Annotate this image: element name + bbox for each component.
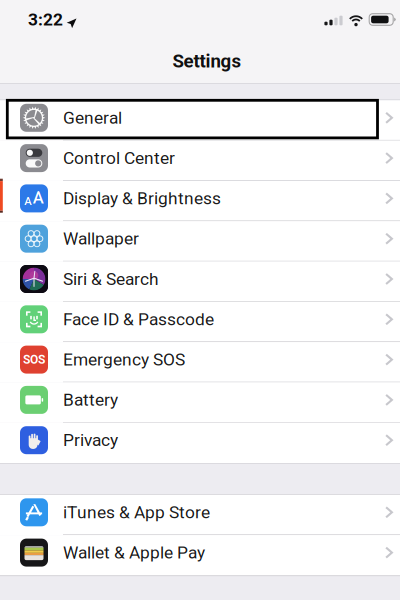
staticText: Control Center (63, 148, 175, 168)
staticText: Settings (172, 50, 241, 72)
staticText: Privacy (63, 430, 118, 450)
button[interactable]: Wallet & Apple Pay (0, 535, 400, 575)
button[interactable]: Siri & Search (0, 261, 400, 302)
button[interactable]: Wallpaper (0, 221, 400, 261)
button[interactable]: iTunes & App Store (0, 495, 400, 535)
button[interactable]: Control Center (0, 141, 400, 181)
button[interactable]: Privacy (0, 423, 400, 463)
staticText: iTunes & App Store (63, 502, 210, 522)
staticText: 3:22 (28, 9, 63, 30)
button[interactable]: A (0, 181, 400, 221)
staticText: A (24, 194, 32, 208)
button[interactable]: Face ID & Passcode (0, 302, 400, 342)
staticText: SOS (23, 353, 45, 367)
staticText: Emergency SOS (63, 349, 185, 370)
staticText: Face ID & Passcode (63, 309, 214, 329)
button[interactable]: General (0, 100, 400, 141)
staticText: Battery (63, 390, 118, 410)
staticText: A (33, 188, 44, 208)
staticText: Display & Brightness (63, 188, 221, 208)
button[interactable]: Battery (0, 382, 400, 423)
staticText: Wallet & Apple Pay (63, 542, 205, 563)
staticText: General (63, 108, 122, 128)
staticText: Siri & Search (63, 269, 159, 289)
staticText: Wallpaper (63, 228, 139, 249)
button[interactable]: SOS (0, 342, 400, 382)
